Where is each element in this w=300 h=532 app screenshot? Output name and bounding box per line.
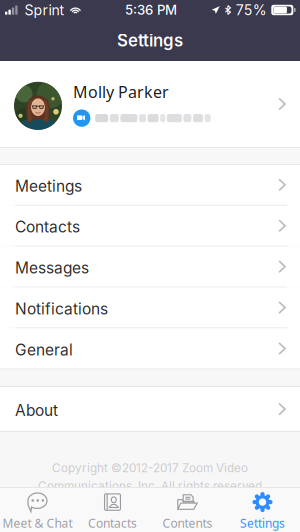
button[interactable]: Contents (150, 488, 225, 532)
staticText: Copyright ©2012-2017 Zoom Video (52, 461, 248, 475)
staticText: Settings (240, 515, 285, 531)
staticText: Sprint (24, 1, 64, 18)
staticText: Contacts (88, 515, 137, 531)
button[interactable]: Meet & Chat (0, 488, 75, 532)
button[interactable]: Messages (0, 247, 300, 287)
staticText: Molly Parker (73, 81, 169, 102)
staticText: 5:36 PM (125, 2, 177, 18)
button[interactable]: Settings (225, 488, 300, 532)
staticText: Meet & Chat (2, 515, 72, 531)
button[interactable]: General (0, 328, 300, 369)
button[interactable]: Notifications (0, 287, 300, 328)
staticText: Contents (162, 515, 212, 531)
staticText: Contacts (15, 218, 80, 236)
staticText: 75% (236, 1, 267, 18)
button[interactable]: Meetings (0, 165, 300, 205)
button[interactable]: Molly Parker (0, 61, 300, 147)
button[interactable]: Contacts (75, 488, 150, 532)
staticText: General (15, 340, 73, 359)
staticText: Settings (117, 30, 183, 51)
staticText: Messages (15, 258, 89, 277)
button[interactable]: About (0, 387, 300, 431)
staticText: Meetings (15, 177, 82, 195)
staticText: About (15, 401, 58, 420)
staticText: Notifications (15, 299, 108, 318)
staticText: Communications, Inc. All rights reserved (38, 479, 262, 493)
button[interactable]: Contacts (0, 206, 300, 246)
